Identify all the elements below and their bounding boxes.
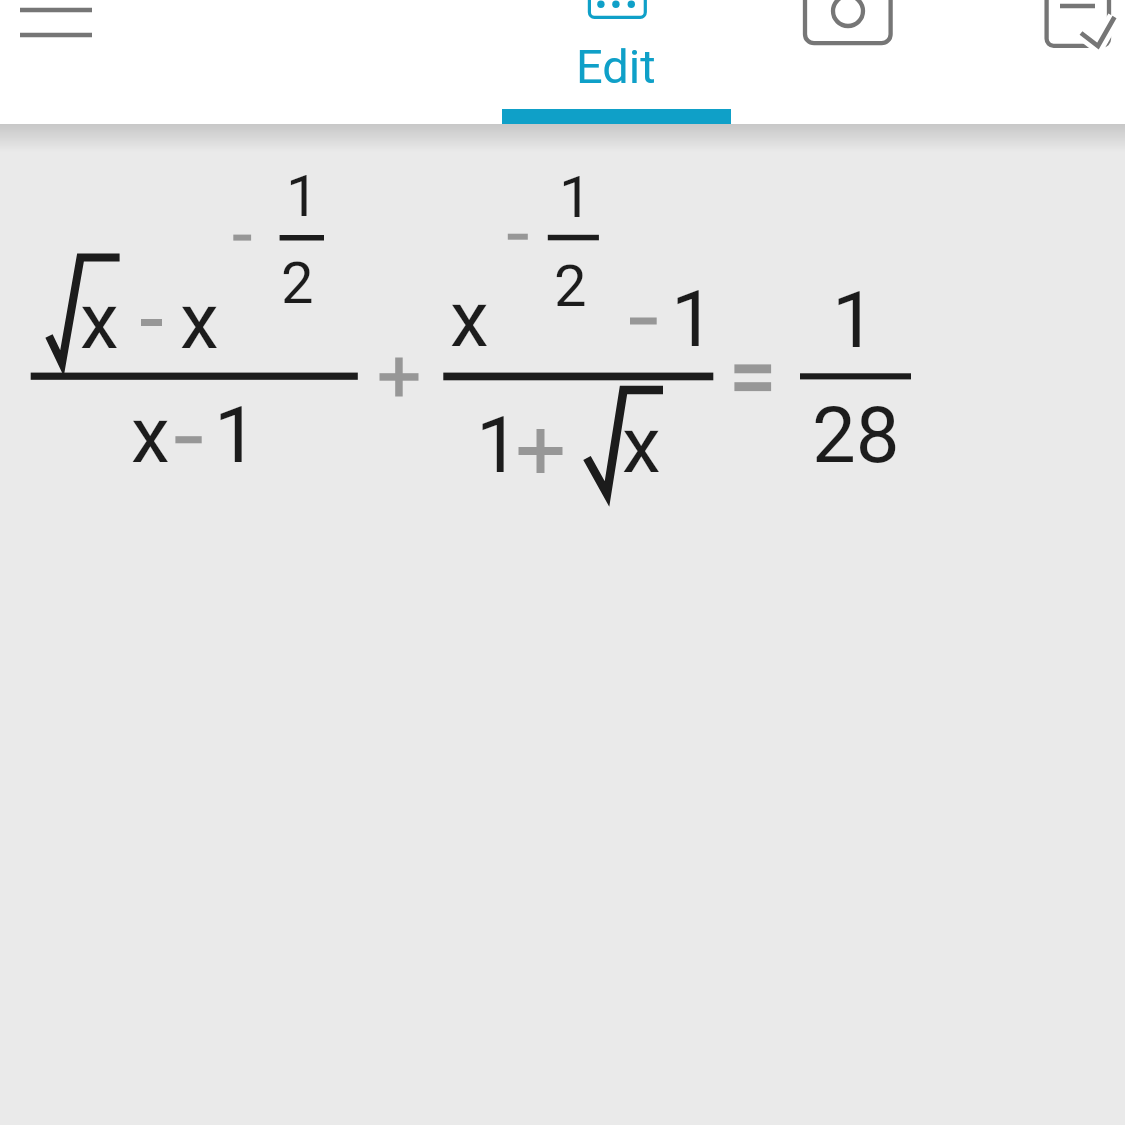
staticText: 1 [286, 162, 319, 230]
staticText: x [131, 390, 170, 481]
staticText: 1 [671, 274, 715, 365]
button[interactable] [503, 0, 731, 124]
staticText: 1 [214, 390, 258, 481]
staticText: Edit [576, 39, 656, 94]
staticText: 1 [832, 275, 876, 366]
staticText: x [622, 400, 661, 491]
button[interactable] [25, 160, 915, 505]
button[interactable] [1030, 0, 1125, 62]
staticText: 2 [281, 249, 314, 317]
staticText: 1 [476, 400, 520, 491]
staticText: 1 [559, 163, 592, 231]
staticText: 2 [554, 252, 587, 320]
staticText: x [450, 274, 489, 365]
button[interactable] [785, 0, 905, 62]
staticText: x [180, 276, 219, 367]
staticText: 28 [812, 390, 900, 481]
staticText: x [80, 276, 119, 367]
button[interactable] [0, 0, 112, 62]
